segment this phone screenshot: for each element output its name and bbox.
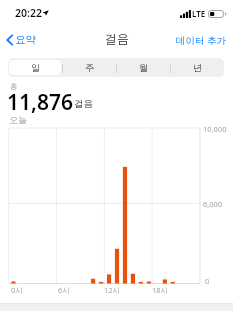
staticText: 18시	[152, 285, 169, 295]
button[interactable]: 월	[117, 60, 169, 75]
staticText: 월	[139, 62, 148, 73]
staticText: 일	[31, 62, 40, 73]
staticText: 6시	[58, 285, 70, 295]
staticText: 0	[205, 276, 210, 286]
staticText: 데이터 추가	[176, 34, 226, 47]
staticText: 총	[10, 82, 18, 91]
button[interactable]: 요약	[6, 33, 36, 46]
button[interactable]: 데이터 추가	[176, 34, 226, 47]
staticText: 요약	[15, 33, 36, 46]
button[interactable]: 일	[9, 60, 61, 75]
button[interactable]: 주	[63, 60, 115, 75]
staticText: 걸음	[105, 31, 129, 46]
staticText: 10,000	[203, 124, 227, 134]
staticText: 년	[193, 62, 202, 73]
staticText: 20:22	[15, 6, 42, 20]
staticText: 0시	[11, 285, 23, 295]
button[interactable]: 년	[171, 60, 223, 75]
staticText: 걸음	[74, 98, 93, 110]
staticText: 12시	[104, 285, 121, 295]
staticText: 6,000	[203, 199, 223, 209]
staticText: 11,876	[7, 88, 73, 117]
staticText: LTE	[192, 8, 206, 19]
staticText: 주	[85, 62, 94, 73]
staticText: 오늘	[9, 114, 27, 125]
